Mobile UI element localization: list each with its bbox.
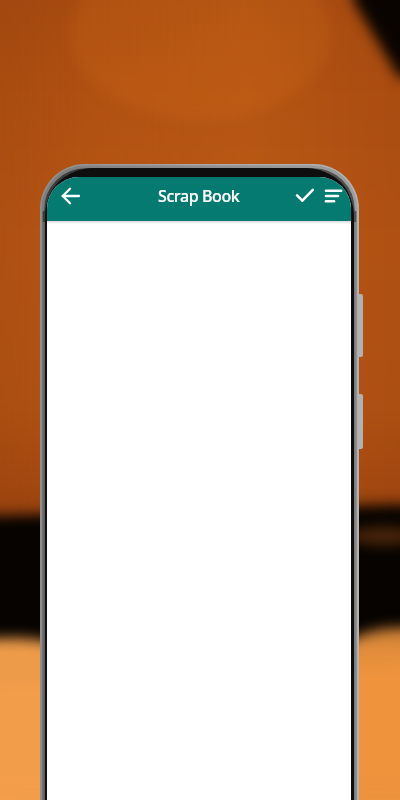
button[interactable] (56, 181, 86, 211)
staticText: Scrap Book (158, 185, 240, 207)
button[interactable] (320, 182, 348, 210)
button[interactable] (290, 181, 320, 211)
